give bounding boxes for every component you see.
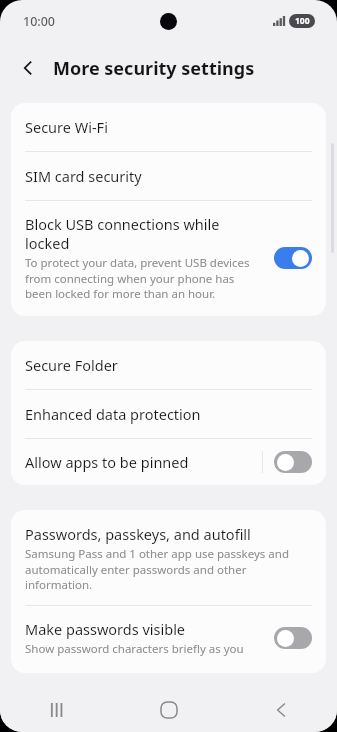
staticText: Block USB connections while locked: [25, 214, 262, 253]
button[interactable]: Secure Wi-Fi: [11, 103, 326, 151]
staticText: 100: [295, 15, 310, 27]
staticText: To protect your data, prevent USB device…: [25, 255, 262, 301]
staticText: SIM card security: [25, 166, 142, 186]
staticText: Samsung Pass and 1 other app use passkey…: [25, 546, 312, 592]
button[interactable]: SIM card security: [11, 152, 326, 200]
staticText: More security settings: [53, 56, 255, 81]
staticText: Make passwords visible: [25, 619, 186, 639]
staticText: Passwords, passkeys, and autofill: [25, 524, 251, 544]
staticText: Allow apps to be pinned: [25, 452, 189, 472]
button[interactable]: Back: [225, 688, 337, 732]
button[interactable]: Off: [274, 451, 312, 473]
button[interactable]: Block USB connections while locked: [11, 201, 326, 316]
button[interactable]: Off: [274, 627, 312, 649]
staticText: 10:00: [23, 13, 56, 30]
button[interactable]: Allow apps to be pinned: [11, 439, 326, 485]
staticText: Secure Folder: [25, 355, 118, 375]
button[interactable]: Make passwords visible: [11, 606, 326, 673]
button[interactable]: Enhanced data protection: [11, 390, 326, 438]
button[interactable]: On: [274, 247, 312, 269]
button[interactable]: Recent apps: [0, 688, 113, 732]
staticText: Enhanced data protection: [25, 404, 201, 424]
staticText: Show password characters briefly as you: [25, 641, 244, 657]
button[interactable]: Back: [12, 52, 44, 84]
button[interactable]: Secure Folder: [11, 341, 326, 389]
staticText: Secure Wi-Fi: [25, 117, 108, 137]
button[interactable]: Passwords, passkeys, and autofill: [11, 510, 326, 605]
button[interactable]: Home: [113, 688, 225, 732]
